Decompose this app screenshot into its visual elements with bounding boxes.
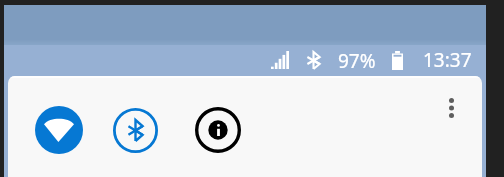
- button[interactable]: Wi-Fi: [35, 106, 83, 154]
- staticText: 97%: [338, 48, 376, 74]
- staticText: 13:37: [423, 47, 472, 73]
- button[interactable]: More options: [431, 88, 471, 128]
- button[interactable]: Bluetooth: [113, 108, 158, 153]
- button[interactable]: Info: [195, 107, 241, 153]
